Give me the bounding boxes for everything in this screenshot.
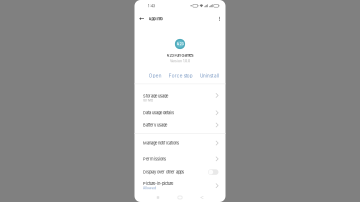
button[interactable]: Uninstall [197, 68, 222, 83]
staticText: 1:43 [148, 3, 155, 8]
staticText: Manage notifications [143, 141, 179, 145]
staticText: App info [149, 16, 163, 21]
staticText: Open [149, 73, 162, 79]
staticText: Force stop [169, 73, 193, 79]
button[interactable]: Force stop [166, 68, 196, 83]
button[interactable]: Manage notifications [134, 134, 225, 152]
staticText: 101 MB [143, 98, 153, 102]
staticText: Permissions [143, 156, 166, 161]
button[interactable]: More options [215, 11, 224, 26]
staticText: Data usage details [143, 110, 174, 115]
staticText: A23 Fun Games [166, 53, 193, 58]
staticText: Uninstall [200, 73, 219, 79]
button[interactable]: Recents [147, 193, 169, 202]
button[interactable]: Open [146, 68, 165, 83]
staticText: Picture-in-picture [143, 181, 173, 186]
staticText: Allowed [143, 186, 156, 190]
staticText: Storage usage [143, 93, 168, 98]
button[interactable]: Permissions [134, 152, 225, 165]
staticText: Battery usage [143, 122, 167, 127]
button[interactable]: Display over other apps [134, 165, 225, 179]
button[interactable]: Home [169, 193, 191, 202]
button[interactable]: Battery usage [134, 119, 225, 131]
button[interactable]: Storage usage [134, 84, 225, 107]
button[interactable]: Picture-in-picture [134, 179, 225, 193]
button[interactable]: Data usage details [134, 107, 225, 119]
staticText: Display over other apps [143, 170, 184, 174]
button[interactable]: Back [136, 11, 148, 26]
staticText: A23 [176, 42, 183, 46]
staticText: Version 1.0.0 [170, 59, 190, 63]
